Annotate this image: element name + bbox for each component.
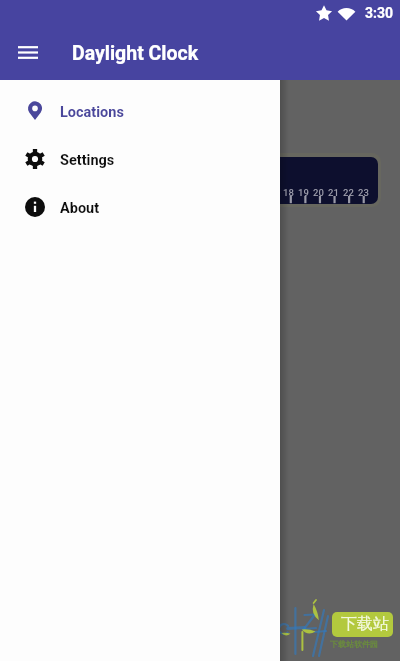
button[interactable]: 0 (14, 157, 378, 204)
button[interactable]: Open navigation drawer (0, 25, 56, 79)
staticText: 20 (313, 187, 324, 198)
button[interactable]: About (0, 182, 280, 230)
staticText: Settings (60, 152, 115, 169)
staticText: Daylight Clock (72, 42, 199, 65)
button[interactable]: Settings (0, 134, 280, 182)
staticText: 22 (343, 187, 354, 198)
button[interactable]: Locations (0, 86, 280, 134)
staticText: 19 (298, 187, 309, 198)
staticText: 23 (358, 187, 369, 198)
staticText: 下载站软件园 (330, 639, 378, 649)
staticText: About (60, 200, 100, 217)
staticText: 21 (328, 187, 339, 198)
staticText: 3:30 (365, 5, 394, 21)
staticText: Locations (60, 104, 124, 121)
staticText: 18 (283, 187, 294, 198)
other: Menu (18, 46, 38, 59)
staticText: 下载站 (341, 614, 389, 634)
